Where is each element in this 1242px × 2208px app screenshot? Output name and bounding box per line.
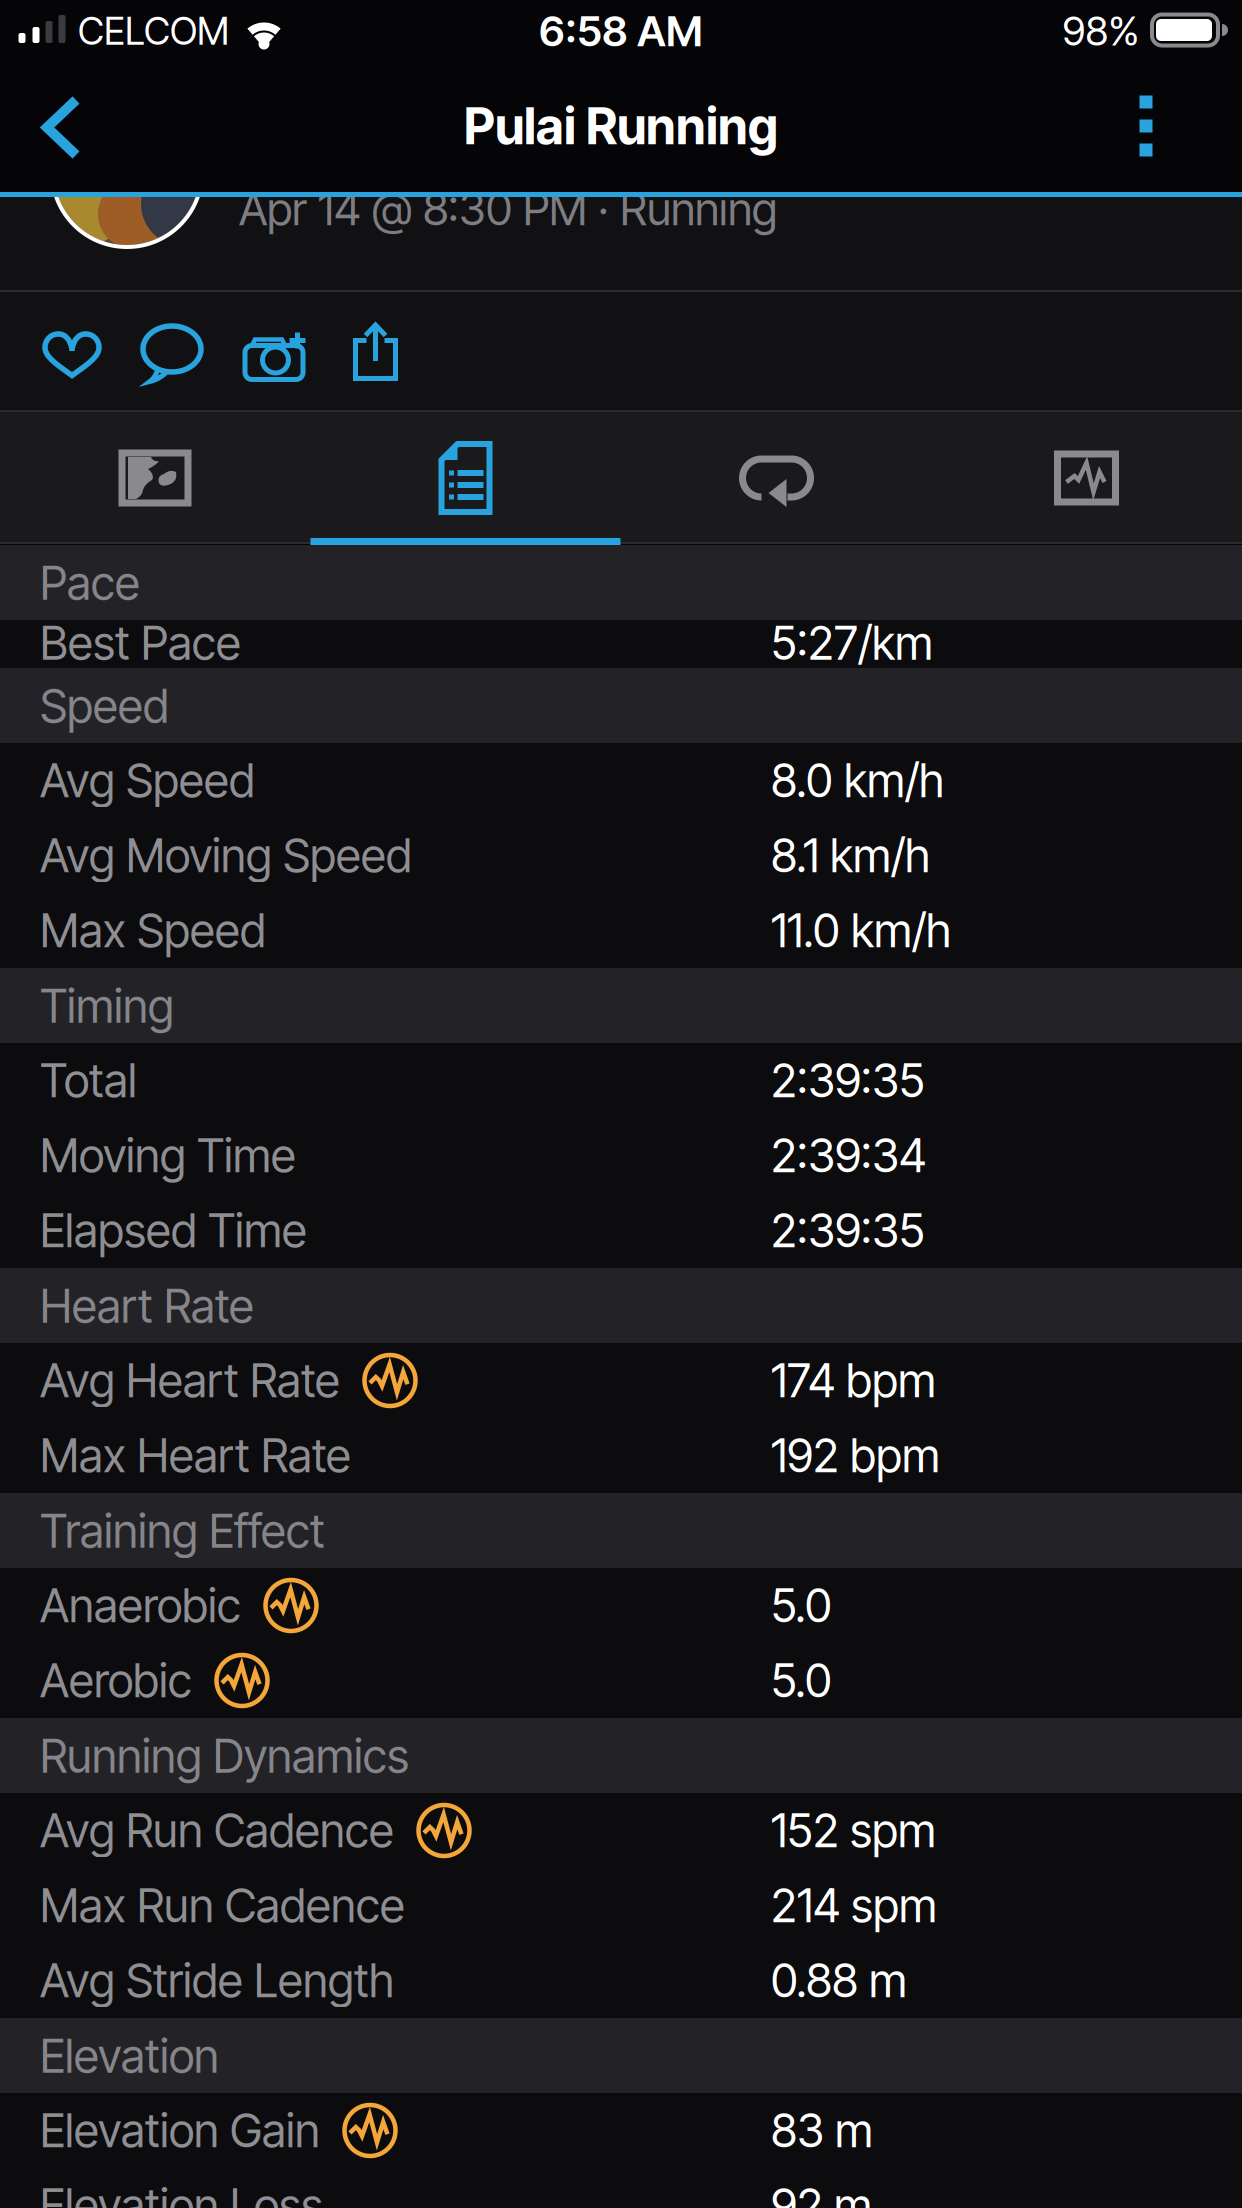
staticText: 174 bpm [771, 1353, 936, 1408]
button[interactable]: Back [15, 77, 95, 177]
staticText: 2:39:34 [771, 1128, 926, 1183]
staticText: 11.0 km/h [771, 903, 951, 958]
staticText: Avg Speed [40, 753, 255, 808]
staticText: Avg Run Cadence [40, 1803, 394, 1858]
button[interactable]: Map [107, 430, 203, 526]
button[interactable]: Charts [1038, 430, 1134, 526]
staticText: Avg Heart Rate [40, 1353, 340, 1408]
staticText: Max Run Cadence [40, 1878, 405, 1933]
staticText: 192 bpm [771, 1428, 940, 1483]
staticText: 8.1 km/h [771, 828, 930, 883]
staticText: Elevation Gain [40, 2103, 320, 2158]
staticText: Pulai Running [464, 96, 778, 155]
button[interactable]: More options [1106, 76, 1186, 176]
staticText: Moving Time [40, 1128, 296, 1183]
staticText: 8.0 km/h [771, 753, 944, 808]
staticText: Avg Stride Length [40, 1953, 394, 2008]
staticText: 2:39:35 [771, 1053, 925, 1108]
staticText: Running Dynamics [40, 1729, 409, 1783]
button[interactable]: Comment [124, 304, 220, 400]
staticText: Max Heart Rate [40, 1428, 351, 1483]
staticText: Best Pace [40, 616, 241, 670]
staticText: Pace [40, 556, 140, 610]
staticText: Max Speed [40, 903, 266, 958]
staticText: CELCOM [78, 9, 229, 53]
staticText: Speed [40, 679, 169, 733]
staticText: 6:58 AM [539, 6, 703, 56]
button[interactable]: Details [417, 430, 513, 526]
staticText: Training Effect [40, 1504, 325, 1558]
staticText: Aerobic [40, 1653, 192, 1708]
staticText: 0.88 m [771, 1953, 907, 2008]
button[interactable]: Laps [728, 430, 824, 526]
staticText: Apr 14 @ 8:30 PM · Running [239, 182, 777, 236]
button[interactable]: Add photo [227, 304, 323, 400]
staticText: 214 spm [771, 1878, 937, 1933]
staticText: 2:39:35 [771, 1203, 925, 1258]
staticText: Elapsed Time [40, 1203, 307, 1258]
staticText: 5:27/km [771, 616, 933, 670]
button[interactable]: Like [24, 304, 120, 400]
staticText: 5.0 [771, 1653, 832, 1708]
staticText: 83 m [771, 2103, 873, 2158]
staticText: Elevation [40, 2029, 219, 2083]
staticText: Anaerobic [40, 1578, 241, 1633]
staticText: 5.0 [771, 1578, 832, 1633]
button[interactable]: Share [328, 304, 424, 400]
staticText: 98% [1062, 7, 1139, 55]
staticText: Avg Moving Speed [40, 828, 412, 883]
staticText: 92 m [771, 2178, 872, 2208]
staticText: Heart Rate [40, 1279, 254, 1333]
staticText: 152 spm [771, 1803, 936, 1858]
staticText: Timing [40, 979, 174, 1033]
staticText: Total [40, 1053, 137, 1108]
staticText: Elevation Loss [40, 2178, 323, 2208]
